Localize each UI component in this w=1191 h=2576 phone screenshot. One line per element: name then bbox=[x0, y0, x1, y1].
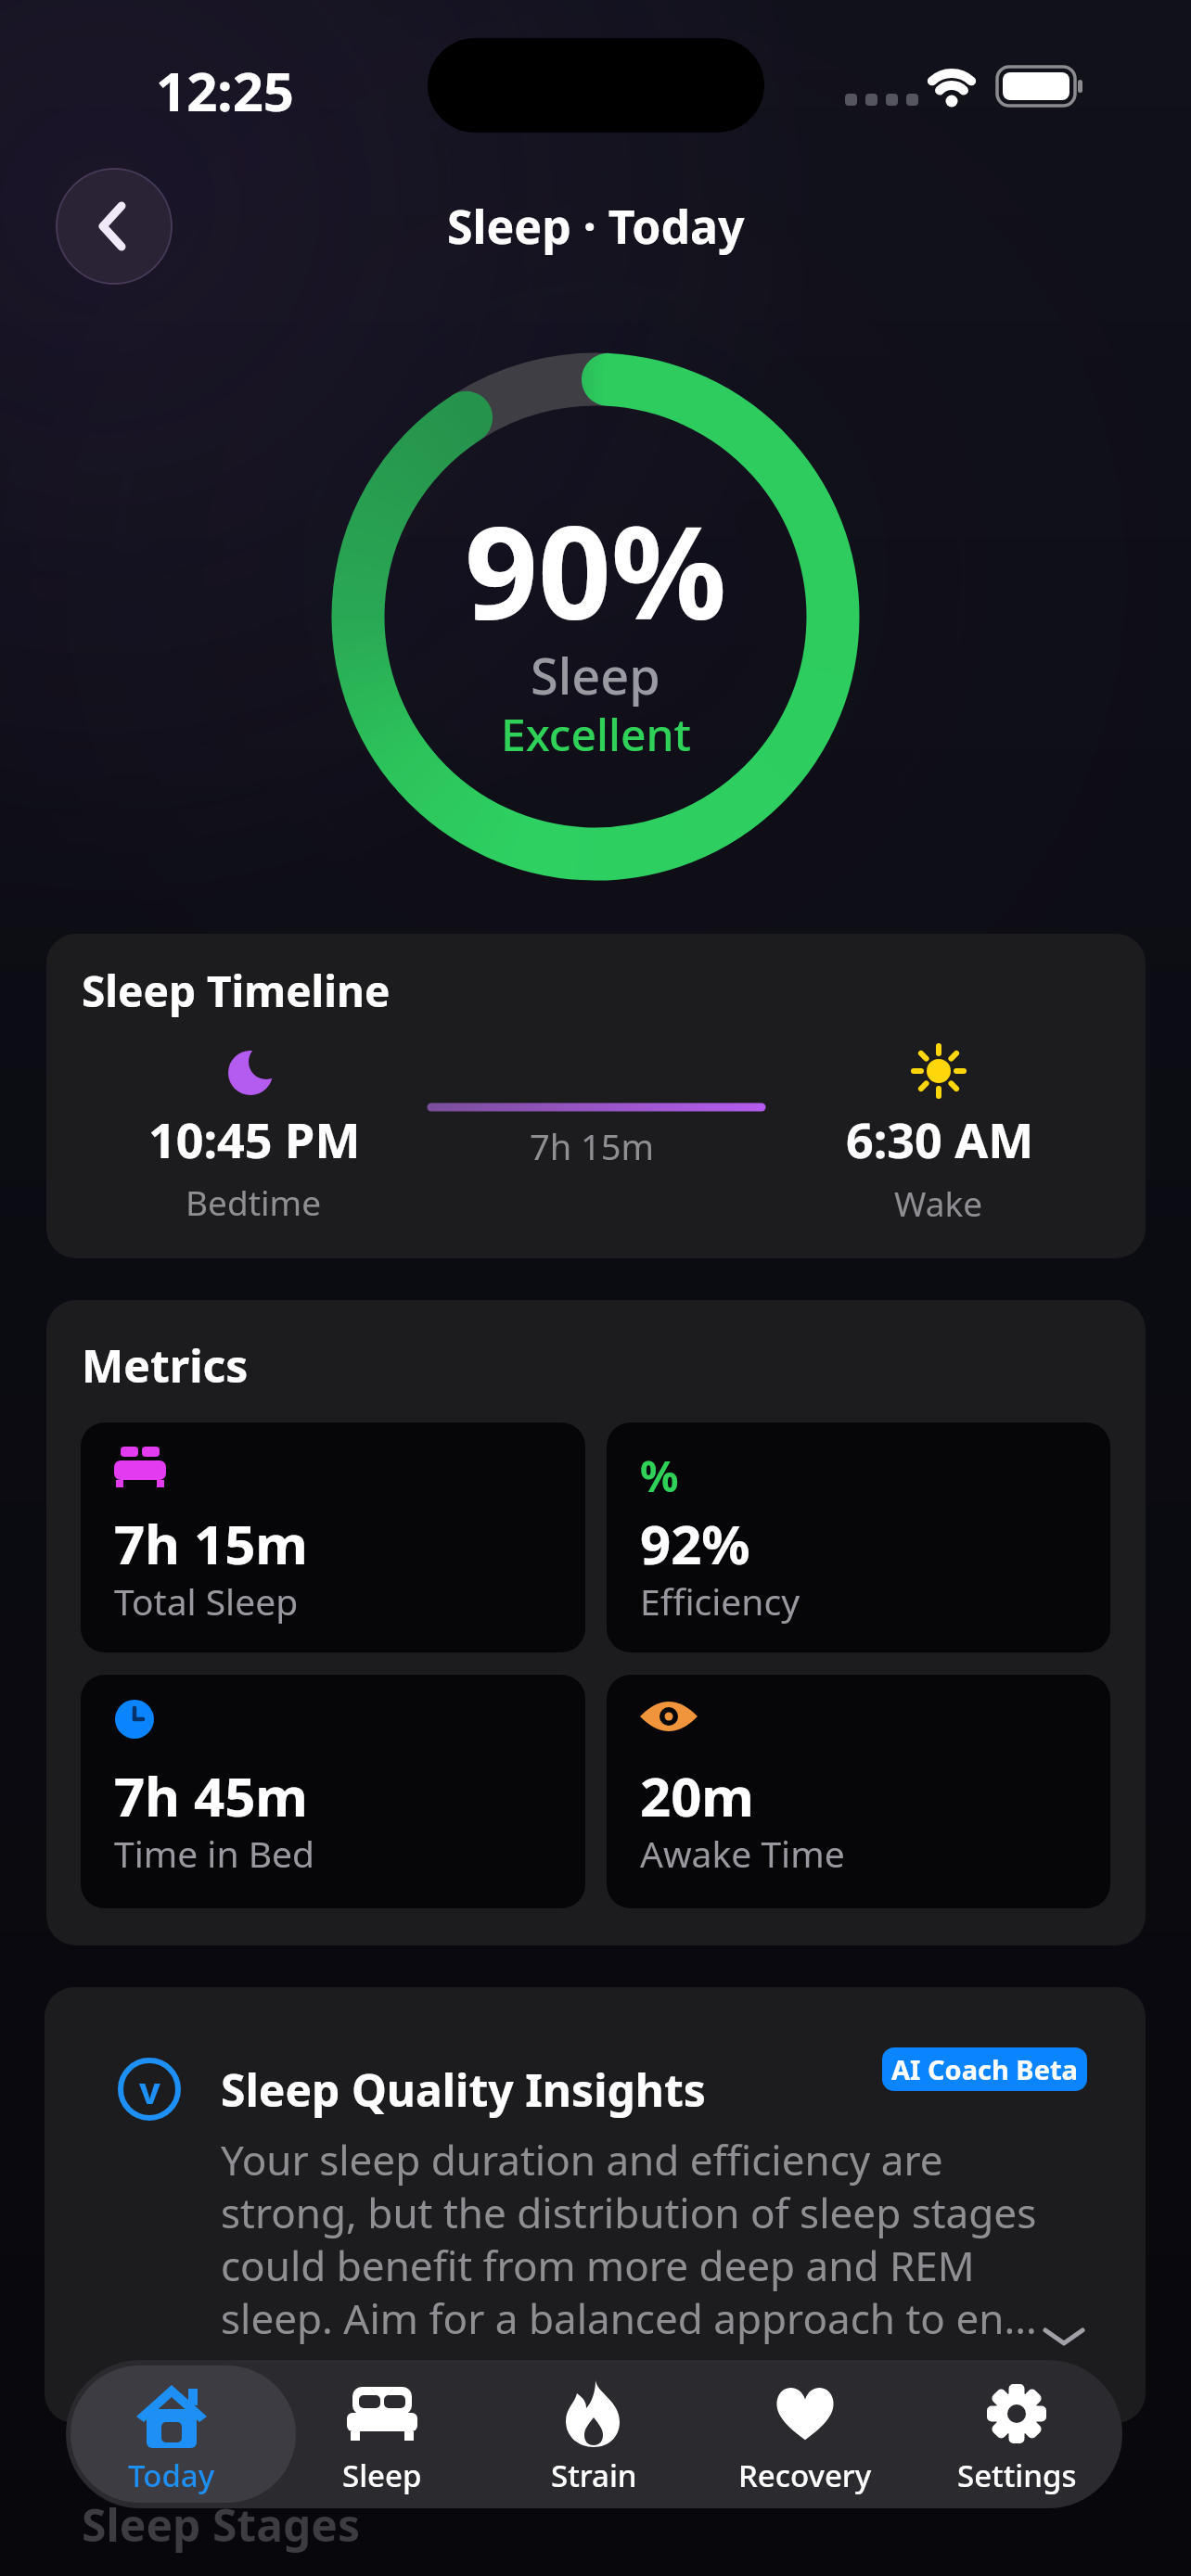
staticText: Wake bbox=[894, 1180, 983, 1226]
button[interactable]: 7h 15m bbox=[81, 1422, 585, 1652]
staticText: 7h 15m bbox=[114, 1507, 308, 1580]
staticText: 7h 15m bbox=[530, 1122, 655, 1170]
staticText: Time in Bed bbox=[114, 1829, 314, 1878]
staticText: 92% bbox=[640, 1507, 750, 1580]
staticText: Sleep bbox=[342, 2455, 422, 2496]
staticText: Sleep bbox=[531, 641, 660, 709]
staticText: Sleep Quality Insights bbox=[221, 2060, 706, 2120]
staticText: Excellent bbox=[501, 704, 691, 764]
staticText: % bbox=[640, 1447, 679, 1505]
staticText: Bedtime bbox=[186, 1179, 322, 1225]
button[interactable]: 20m bbox=[607, 1675, 1110, 1908]
button[interactable]: % bbox=[607, 1422, 1110, 1652]
staticText: Total Sleep bbox=[114, 1576, 299, 1626]
staticText: AI Coach Beta bbox=[891, 2051, 1078, 2087]
staticText: Sleep Timeline bbox=[82, 962, 391, 1020]
staticText: Awake Time bbox=[640, 1829, 845, 1878]
button[interactable]: AI Coach Beta bbox=[882, 2047, 1087, 2091]
staticText: Today bbox=[128, 2455, 215, 2496]
staticText: Sleep · Today bbox=[447, 195, 745, 258]
staticText: 90% bbox=[465, 482, 727, 631]
staticText: 10:45 PM bbox=[148, 1106, 361, 1172]
staticText: Your sleep duration and efficiency are s… bbox=[221, 2132, 1037, 2346]
button[interactable]: Settings bbox=[911, 2373, 1122, 2508]
staticText: Efficiency bbox=[640, 1576, 800, 1626]
staticText: Metrics bbox=[82, 1335, 249, 1396]
button[interactable]: Recovery bbox=[699, 2373, 911, 2508]
staticText: Strain bbox=[551, 2455, 637, 2496]
staticText: Sleep Stages bbox=[82, 2494, 361, 2555]
button[interactable]: Today bbox=[66, 2373, 276, 2508]
button[interactable] bbox=[1044, 2326, 1085, 2352]
button[interactable]: Strain bbox=[488, 2373, 699, 2508]
staticText: 7h 45m bbox=[114, 1759, 308, 1832]
button[interactable] bbox=[56, 168, 173, 285]
button[interactable]: Sleep bbox=[276, 2373, 488, 2508]
staticText: v bbox=[139, 2064, 160, 2114]
staticText: 12:25 bbox=[156, 54, 295, 127]
button[interactable]: 7h 45m bbox=[81, 1675, 585, 1908]
staticText: Settings bbox=[957, 2455, 1077, 2496]
staticText: Recovery bbox=[738, 2455, 872, 2496]
staticText: 6:30 AM bbox=[846, 1106, 1034, 1172]
staticText: 20m bbox=[640, 1759, 754, 1832]
